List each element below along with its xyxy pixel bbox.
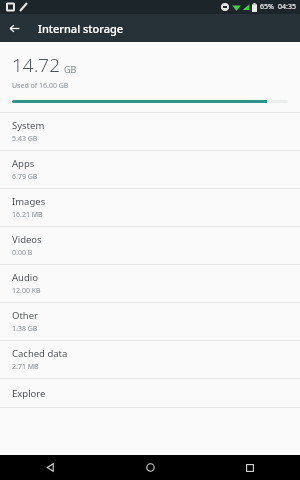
staticText: 6.79 GB (12, 172, 38, 182)
staticText: 65% (260, 2, 274, 12)
button[interactable]: Home (100, 455, 200, 480)
button[interactable]: Back (0, 14, 28, 42)
staticText: 2.71 MB (12, 362, 39, 372)
button[interactable]: Back (0, 455, 100, 480)
staticText: Other (12, 309, 39, 322)
button[interactable]: Explore (0, 379, 300, 407)
button[interactable]: Recent apps (200, 455, 300, 480)
button[interactable]: Cached data (0, 341, 300, 378)
staticText: GB (64, 63, 77, 75)
staticText: 14.72 (12, 52, 61, 78)
staticText: 1.38 GB (12, 324, 38, 334)
staticText: Videos (12, 233, 42, 246)
button[interactable]: Audio (0, 265, 300, 302)
staticText: 04:35 (278, 2, 296, 12)
staticText: 5.43 GB (12, 134, 38, 144)
staticText: Cached data (12, 347, 68, 360)
staticText: Used of 16.00 GB (12, 81, 69, 91)
button[interactable]: Images (0, 189, 300, 226)
staticText: System (12, 119, 45, 132)
staticText: Apps (12, 157, 35, 170)
button[interactable]: Other (0, 303, 300, 340)
button[interactable]: System (0, 113, 300, 150)
staticText: Audio (12, 271, 38, 284)
staticText: 16.21 MB (12, 210, 43, 220)
button[interactable]: Videos (0, 227, 300, 264)
staticText: Explore (12, 387, 46, 400)
staticText: 12.00 KB (12, 286, 41, 296)
staticText: 0.00 B (12, 248, 33, 258)
staticText: Images (12, 195, 46, 208)
staticText: Internal storage (38, 21, 124, 36)
button[interactable]: Apps (0, 151, 300, 188)
